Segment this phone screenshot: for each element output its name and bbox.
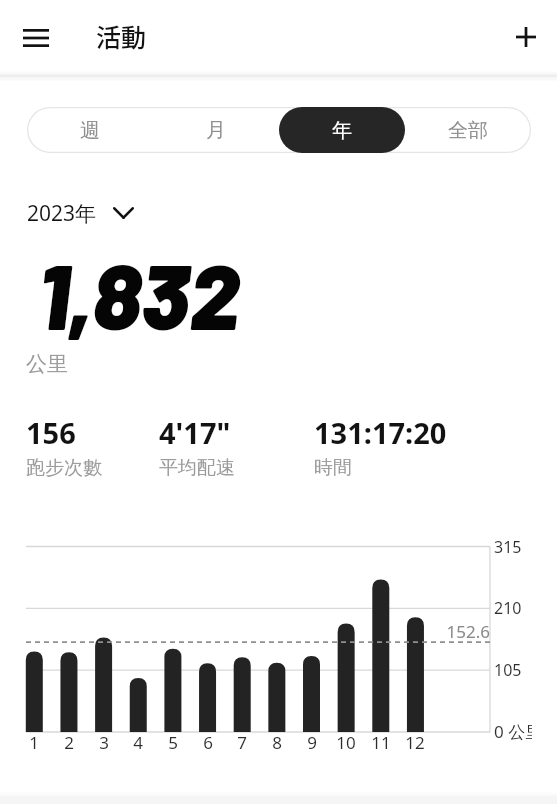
staticText: 5 [153, 731, 193, 754]
staticText: 156 [26, 413, 76, 452]
button[interactable]: Menu [8, 17, 64, 59]
staticText: 105 [494, 659, 522, 681]
staticText: 6 [188, 731, 228, 754]
button[interactable]: 週 [27, 107, 153, 153]
staticText: 1,832 [38, 240, 240, 348]
staticText: 公里 [26, 351, 68, 377]
staticText: 年 [332, 118, 352, 143]
staticText: 12 [395, 731, 435, 754]
staticText: 4'17" [159, 413, 231, 452]
button[interactable]: 全部 [405, 107, 531, 153]
staticText: 11 [361, 731, 401, 754]
staticText: 152.6 [388, 620, 490, 643]
button[interactable]: 月 [153, 107, 279, 153]
staticText: 315 [494, 536, 522, 558]
staticText: 時間 [314, 456, 352, 480]
staticText: 活動 [96, 18, 147, 54]
staticText: 週 [80, 118, 100, 143]
staticText: 跑步次數 [26, 456, 102, 480]
staticText: 7 [222, 731, 262, 754]
button[interactable]: 年 [279, 107, 405, 153]
button[interactable]: Add [498, 16, 554, 58]
staticText: 4 [118, 731, 158, 754]
staticText: 9 [292, 731, 332, 754]
staticText: 全部 [448, 118, 488, 143]
staticText: 210 [494, 597, 522, 619]
staticText: 8 [257, 731, 297, 754]
staticText: 1 [14, 731, 54, 754]
button[interactable]: 2023年 [27, 198, 134, 228]
staticText: 平均配速 [159, 456, 235, 480]
staticText: 2 [49, 731, 89, 754]
staticText: 10 [326, 731, 366, 754]
staticText: 0 公里 [494, 720, 532, 742]
staticText: 131:17:20 [314, 413, 447, 452]
staticText: 月 [206, 118, 226, 143]
staticText: 2023年 [27, 199, 97, 228]
staticText: 3 [84, 731, 124, 754]
